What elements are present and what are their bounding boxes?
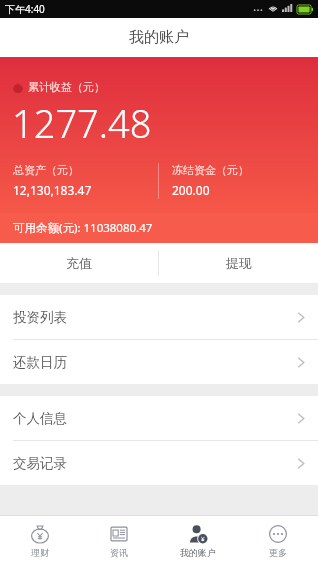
staticText: 还款日历 xyxy=(13,354,67,371)
staticText: 我的账户 xyxy=(129,28,189,47)
button[interactable]: 资讯 xyxy=(79,516,158,566)
button[interactable]: 个人信息 xyxy=(0,396,318,440)
button[interactable]: 提现 xyxy=(159,243,318,283)
staticText: 个人信息 xyxy=(13,410,67,427)
button[interactable]: 更多 xyxy=(238,516,318,566)
staticText: 1277.48 xyxy=(12,97,152,149)
staticText: 下午4:40 xyxy=(5,2,45,16)
staticText: 投资列表 xyxy=(13,309,67,326)
staticText: 充值 xyxy=(66,255,92,271)
staticText: 更多 xyxy=(269,547,287,558)
staticText: 可用余额(元): 11038080.47 xyxy=(13,220,153,236)
button[interactable]: 交易记录 xyxy=(0,441,318,485)
staticText: 冻结资金（元） xyxy=(172,163,249,177)
button[interactable]: 充值 xyxy=(0,243,158,283)
staticText: 12,130,183.47 xyxy=(13,182,92,198)
staticText: 提现 xyxy=(226,255,252,271)
button[interactable]: 还款日历 xyxy=(0,340,318,384)
staticText: 总资产（元） xyxy=(13,163,79,177)
button[interactable]: 理财 xyxy=(0,516,79,566)
button[interactable]: 投资列表 xyxy=(0,295,318,339)
button[interactable]: 我的账户 xyxy=(158,516,238,566)
staticText: 我的账户 xyxy=(180,547,216,558)
staticText: 累计收益（元） xyxy=(28,80,105,94)
staticText: 理财 xyxy=(31,547,49,558)
staticText: 200.00 xyxy=(172,182,210,198)
staticText: 交易记录 xyxy=(13,455,67,472)
staticText: 资讯 xyxy=(110,547,128,558)
